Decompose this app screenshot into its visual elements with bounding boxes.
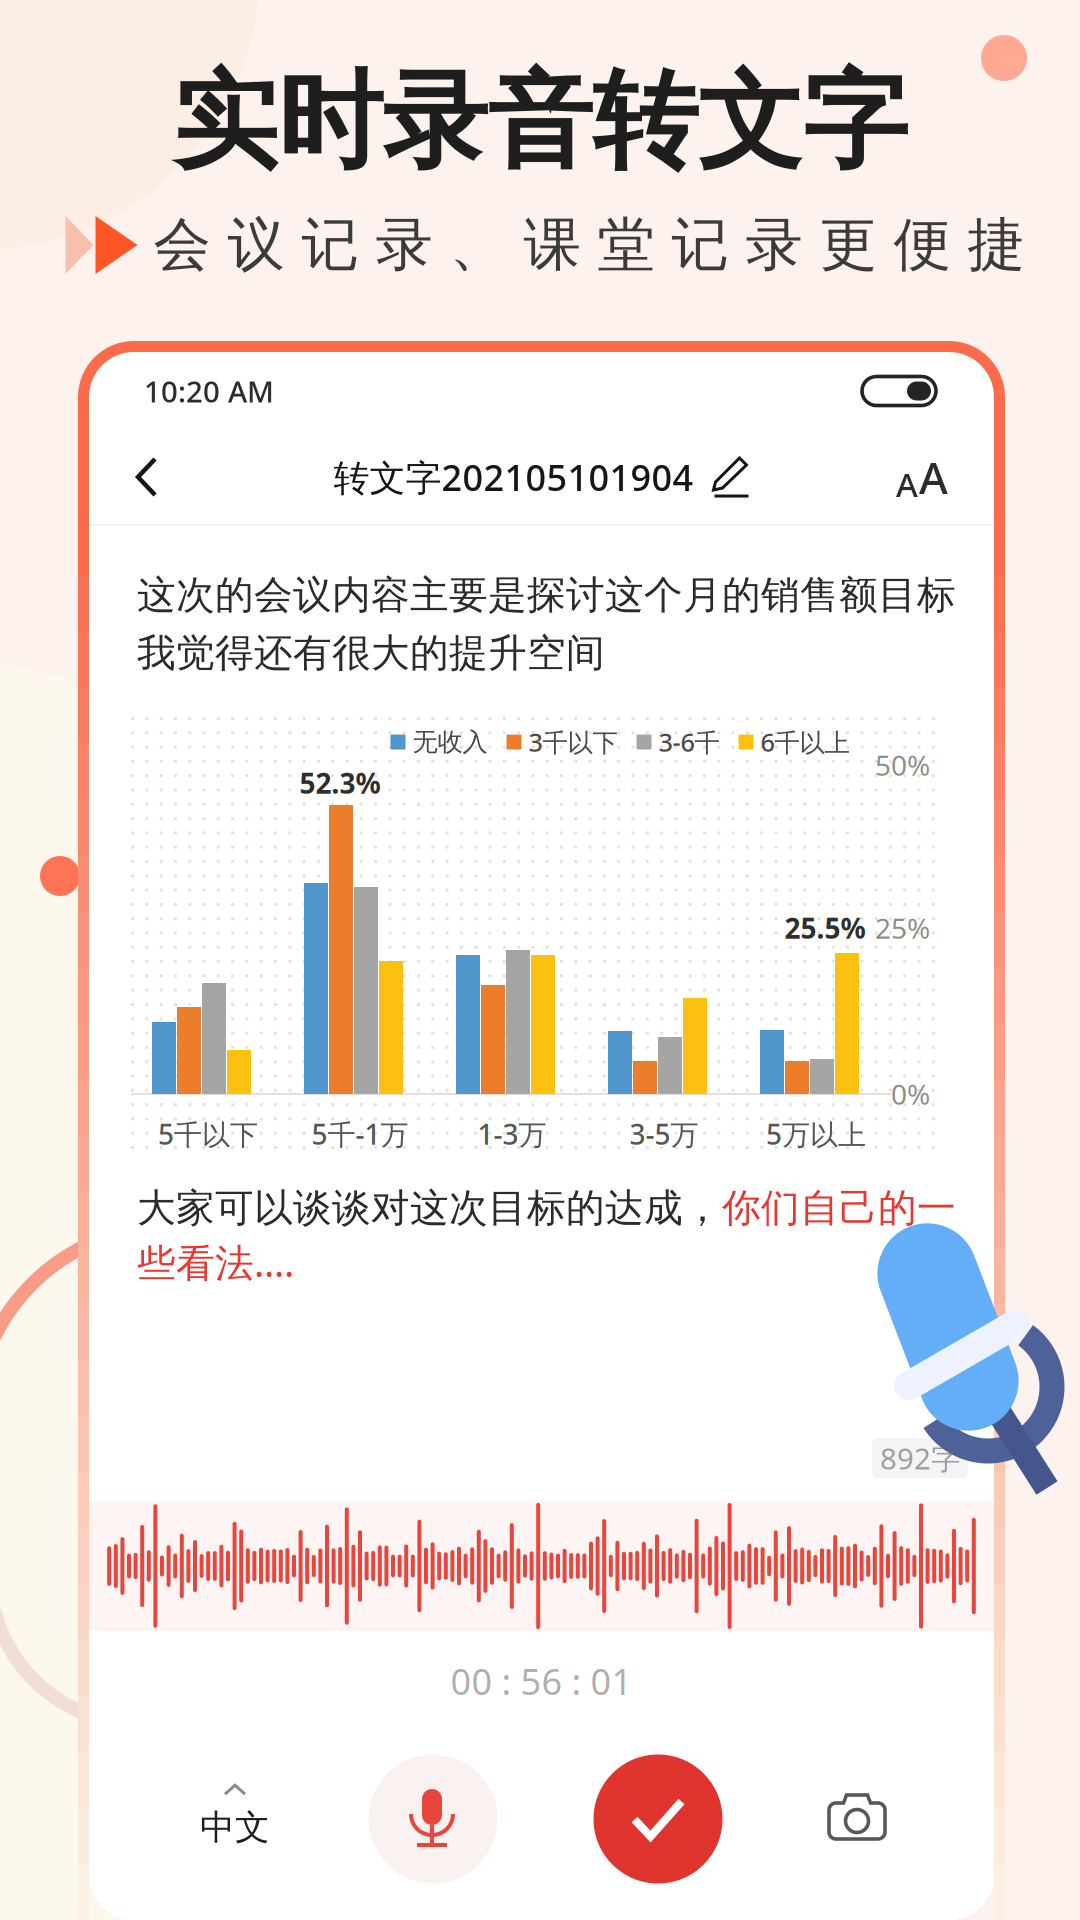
staticText: 无收入 [412,726,487,757]
staticText: 实时录音转文字 [172,57,907,187]
button[interactable]: 转文字202105101904 [332,453,750,501]
staticText: 这次的会议内容主要是探讨这个月的销售额目标 [137,571,956,619]
staticText: 3千以下 [528,725,617,759]
staticText: 50% [875,746,930,784]
staticText: 5千-1万 [311,1115,408,1153]
staticText: 52.3% [299,764,380,802]
staticText: 会 议 记 录 、 课 堂 记 录 更 便 捷 [153,210,1024,280]
staticText: 大家可以谈谈对这次目标的达成， [137,1184,722,1232]
staticText: 转文字202105101904 [333,453,693,501]
staticText: 1-3万 [477,1115,546,1153]
staticText: 10:20 AM [144,371,274,410]
button[interactable]: 录音 [358,1745,508,1893]
button[interactable]: 字号 [838,433,994,521]
button[interactable]: 拍照 [782,1745,932,1893]
staticText: A [919,448,948,506]
staticText: 5千以下 [158,1115,258,1153]
staticText: 些看法.... [137,1236,294,1288]
staticText: 你们自己的一 [722,1184,956,1232]
staticText: 6千以上 [760,725,849,759]
button[interactable]: 中文 [160,1742,310,1890]
staticText: 3-6千 [658,725,719,759]
staticText: 中文 [200,1806,270,1849]
staticText: 892字 [880,1438,960,1477]
staticText: 5万以上 [766,1115,866,1153]
staticText: 25% [875,909,930,947]
staticText: 0% [891,1075,930,1113]
staticText: 我觉得还有很大的提升空间 [137,629,605,677]
staticText: 25.5% [784,909,865,947]
staticText: 00 : 56 : 01 [450,1657,632,1705]
button[interactable]: 完成 [583,1745,733,1893]
staticText: A [896,462,918,506]
staticText: 3-5万 [629,1115,698,1153]
button[interactable]: 返回 [89,433,235,521]
